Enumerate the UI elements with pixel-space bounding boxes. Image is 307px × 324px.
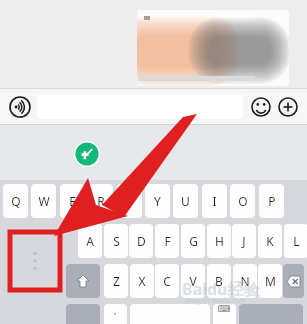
button[interactable]: F xyxy=(155,224,179,258)
button[interactable]: O xyxy=(230,184,255,218)
button[interactable]: R xyxy=(88,184,113,218)
staticText: Z xyxy=(113,273,120,289)
button[interactable]: D xyxy=(129,224,153,258)
staticText: jingyan.baidu.com xyxy=(186,296,247,306)
button[interactable]: Symbols xyxy=(66,304,100,324)
staticText: N xyxy=(240,273,250,289)
staticText: F xyxy=(164,233,171,249)
button[interactable]: E xyxy=(60,184,85,218)
button[interactable]: V xyxy=(181,264,205,298)
button[interactable]: X xyxy=(130,264,154,298)
button[interactable]: J xyxy=(232,224,256,258)
button[interactable]: ⌨ xyxy=(213,304,236,324)
button[interactable]: T xyxy=(117,184,142,218)
staticText: M xyxy=(265,273,276,289)
button[interactable]: P xyxy=(259,184,284,218)
button[interactable]: Y xyxy=(145,184,170,218)
button[interactable]: Keyboard options xyxy=(10,232,60,290)
button[interactable]: Emoji xyxy=(249,95,273,119)
staticText: O xyxy=(238,193,248,209)
staticText: X xyxy=(138,273,146,289)
button[interactable]: K xyxy=(258,224,282,258)
button[interactable]: Backspace xyxy=(283,264,304,298)
staticText: ⌨ xyxy=(218,304,231,314)
staticText: H xyxy=(215,233,224,249)
staticText: D xyxy=(137,233,146,249)
staticText: I xyxy=(212,193,217,209)
button[interactable]: C xyxy=(155,264,179,298)
button[interactable]: S xyxy=(104,224,128,258)
staticText: Baidu经验 xyxy=(182,278,260,300)
button[interactable] xyxy=(137,10,289,86)
staticText: P xyxy=(268,193,276,209)
staticText: G xyxy=(189,233,198,249)
button[interactable]: A xyxy=(78,224,102,258)
staticText: R xyxy=(97,193,105,209)
button[interactable] xyxy=(37,95,243,119)
staticText: W xyxy=(38,193,50,209)
button[interactable]: More xyxy=(276,95,300,119)
button[interactable]: Z xyxy=(104,264,128,298)
staticText: K xyxy=(266,233,274,249)
button[interactable]: B xyxy=(207,264,231,298)
button[interactable]: W xyxy=(31,184,56,218)
staticText: T xyxy=(126,193,133,209)
button[interactable]: H xyxy=(207,224,231,258)
staticText: J xyxy=(242,233,246,249)
staticText: Y xyxy=(154,193,161,209)
staticText: S xyxy=(113,233,120,249)
staticText: L xyxy=(293,233,300,249)
button[interactable]: Shift xyxy=(66,264,100,298)
staticText: U xyxy=(181,193,190,209)
button[interactable]: Voice input xyxy=(8,95,32,119)
button[interactable]: G xyxy=(181,224,205,258)
button[interactable]: , xyxy=(104,304,127,324)
button[interactable]: M xyxy=(258,264,282,298)
button[interactable]: N xyxy=(233,264,257,298)
button[interactable]: App shortcut xyxy=(74,141,100,167)
staticText: V xyxy=(189,273,197,289)
staticText: , xyxy=(114,304,117,316)
button[interactable]: Q xyxy=(3,184,28,218)
staticText: C xyxy=(163,273,171,289)
button[interactable]: I xyxy=(202,184,227,218)
staticText: E xyxy=(69,193,76,209)
staticText: A xyxy=(86,233,94,249)
button[interactable]: L xyxy=(284,224,307,258)
staticText: B xyxy=(215,273,223,289)
staticText: Q xyxy=(11,193,21,209)
button[interactable]: U xyxy=(173,184,198,218)
